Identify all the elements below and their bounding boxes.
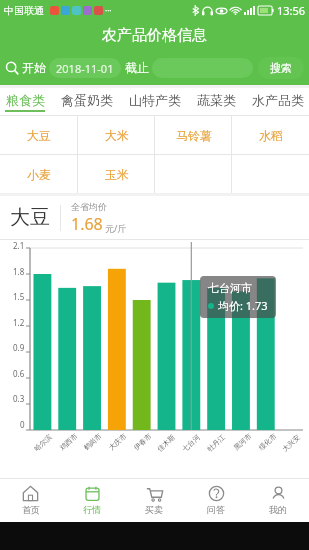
staticText: 佳木斯市 <box>155 430 180 453</box>
staticText: 大庆市 <box>107 431 128 452</box>
staticText: 1.2 <box>13 317 25 328</box>
staticText: 2018-11-01 <box>56 61 114 76</box>
button[interactable]: 大豆 <box>0 116 78 154</box>
button[interactable]: 蔬菜类 <box>195 92 238 112</box>
staticText: 粮食类 <box>6 92 45 108</box>
staticText: 绥化市 <box>257 431 278 452</box>
staticText: 玉米 <box>105 167 129 182</box>
staticText: 截止 <box>125 60 149 75</box>
staticText: 小麦 <box>27 167 51 182</box>
staticText: 搜索 <box>270 61 292 75</box>
staticText: 山特产类 <box>129 92 181 108</box>
button[interactable]: 问答 <box>185 478 247 522</box>
staticText: 元/斤 <box>105 222 127 234</box>
staticText: 大米 <box>105 128 129 143</box>
button[interactable]: 小麦 <box>0 155 78 193</box>
button[interactable]: 首页 <box>0 478 61 522</box>
staticText: 2.1 <box>13 240 25 251</box>
staticText: 买卖 <box>145 504 163 515</box>
staticText: ··· <box>105 5 112 16</box>
button[interactable]: 马铃薯 <box>155 116 232 154</box>
staticText: 水稻 <box>259 128 283 143</box>
staticText: 均价: 1.73 <box>218 298 268 313</box>
button[interactable]: 禽蛋奶类 <box>59 92 115 112</box>
staticText: 首页 <box>22 504 40 515</box>
staticText: 0.3 <box>13 393 25 404</box>
staticText: 问答 <box>207 504 225 515</box>
staticText: 全省均价 <box>71 201 107 212</box>
staticText: 我的 <box>269 504 287 515</box>
button[interactable]: 粮食类 <box>3 92 47 112</box>
staticText: 七台河市 <box>208 281 252 295</box>
staticText: 牡丹江市 <box>205 430 230 453</box>
staticText: 大豆 <box>27 128 51 143</box>
staticText: 0 <box>20 419 25 430</box>
staticText: 农产品价格信息 <box>102 26 207 45</box>
button[interactable]: 大米 <box>78 116 155 154</box>
staticText: 鹤岗市 <box>82 431 103 452</box>
button[interactable]: 行情 <box>61 478 123 522</box>
staticText: 开始 <box>22 60 46 75</box>
staticText: 马铃薯 <box>176 128 212 143</box>
staticText: 13:56 <box>277 3 306 18</box>
staticText: 水产品类 <box>252 92 304 108</box>
staticText: 0.9 <box>13 342 25 353</box>
button[interactable]: 我的 <box>247 478 309 522</box>
staticText: 中国联通 <box>4 4 44 17</box>
staticText: 鸡西市 <box>58 431 79 452</box>
button[interactable]: 玉米 <box>78 155 155 193</box>
staticText: 禽蛋奶类 <box>61 92 113 108</box>
staticText: 七台河市 <box>180 430 205 453</box>
staticText: 行情 <box>83 504 101 515</box>
staticText: 伊春市 <box>132 431 153 452</box>
staticText: 蔬菜类 <box>197 92 236 108</box>
staticText: 大兴安岭地区 <box>280 430 305 453</box>
other: Search <box>5 61 19 75</box>
button[interactable]: 搜索 <box>258 57 304 79</box>
staticText: 大豆 <box>10 205 50 230</box>
staticText: 黑河市 <box>232 431 253 452</box>
button[interactable]: 2018-11-01 <box>49 58 121 78</box>
button[interactable]: 山特产类 <box>127 92 183 112</box>
staticText: 哈尔滨市 <box>32 430 56 453</box>
staticText: 1.8 <box>13 266 25 277</box>
button[interactable]: 买卖 <box>123 478 185 522</box>
button[interactable]: 水产品类 <box>250 92 306 112</box>
staticText: 1.68 <box>71 213 103 235</box>
staticText: 0.6 <box>13 368 25 379</box>
button[interactable]: 水稻 <box>232 116 309 154</box>
staticText: 1.5 <box>13 291 25 302</box>
button[interactable] <box>152 58 253 78</box>
